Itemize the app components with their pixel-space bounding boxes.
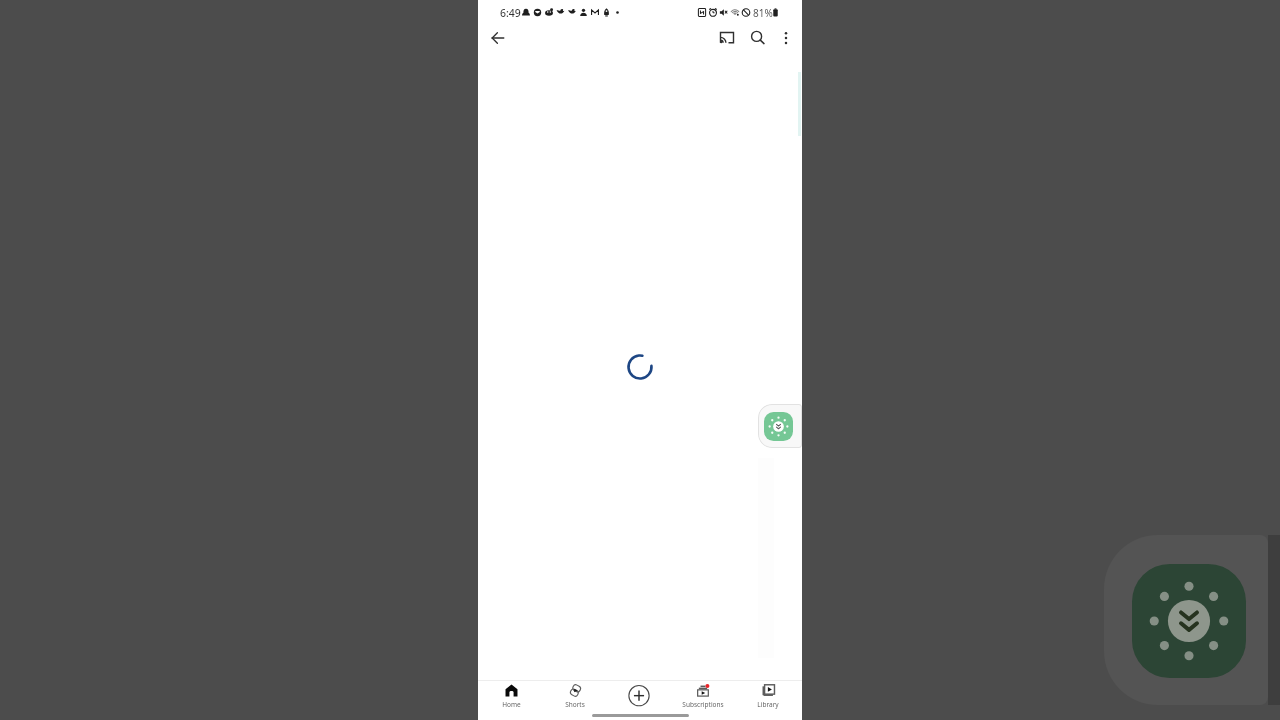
staticText: Shorts bbox=[565, 700, 585, 709]
button[interactable]: Download manager bbox=[758, 404, 802, 448]
button[interactable]: Create bbox=[607, 681, 671, 709]
button[interactable]: Cast bbox=[715, 26, 739, 50]
button[interactable]: Shorts bbox=[543, 681, 607, 709]
button[interactable]: Subscriptions bbox=[671, 681, 735, 709]
staticText: Home bbox=[502, 700, 521, 709]
button[interactable]: Home bbox=[479, 681, 543, 709]
button[interactable]: Search bbox=[746, 26, 770, 50]
button[interactable]: More options bbox=[774, 26, 798, 50]
staticText: 6:49 bbox=[500, 6, 521, 20]
staticText: Library bbox=[757, 700, 779, 709]
button[interactable]: Library bbox=[736, 681, 800, 709]
staticText: 81% bbox=[753, 6, 773, 20]
staticText: Subscriptions bbox=[682, 700, 724, 709]
button[interactable]: Back bbox=[486, 26, 510, 50]
